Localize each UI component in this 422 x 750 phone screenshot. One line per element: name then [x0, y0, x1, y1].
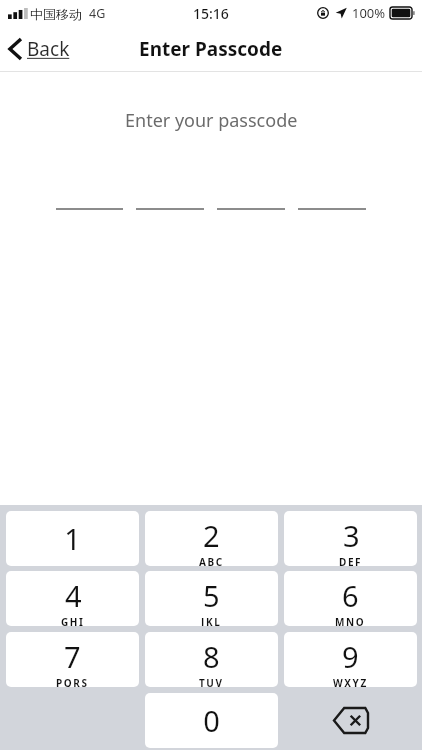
button[interactable]: 9	[284, 632, 417, 687]
staticText: WXYZ	[333, 676, 368, 687]
staticText: DEF	[339, 555, 363, 566]
staticText: PQRS	[56, 676, 89, 687]
staticText: TUV	[199, 676, 224, 687]
staticText: 8	[203, 637, 220, 676]
button[interactable]: 1	[6, 511, 139, 566]
staticText: 4	[65, 576, 82, 615]
staticText: 3	[343, 516, 360, 555]
staticText: 1	[64, 519, 81, 558]
staticText: 15:16	[193, 4, 229, 23]
staticText: JKL	[201, 615, 222, 626]
staticText: MNO	[335, 615, 366, 626]
staticText: GHI	[61, 615, 85, 626]
button[interactable]: 2	[145, 511, 278, 566]
staticText: Back	[27, 36, 70, 62]
staticText: 4G	[89, 5, 106, 22]
button[interactable]: 6	[284, 571, 417, 626]
button[interactable]: 0	[145, 693, 278, 748]
button[interactable]: 3	[284, 511, 417, 566]
button[interactable]: 4	[6, 571, 139, 626]
button[interactable]: 5	[145, 571, 278, 626]
button[interactable]: 7	[6, 632, 139, 687]
staticText: 2	[203, 516, 220, 555]
staticText: ABC	[199, 555, 224, 566]
staticText: 9	[342, 637, 359, 676]
staticText: 0	[203, 701, 220, 740]
staticText: 6	[342, 576, 359, 615]
staticText: 中国移动	[30, 6, 82, 22]
staticText: 100%	[352, 4, 386, 22]
staticText: 7	[64, 637, 81, 676]
staticText: Enter Passcode	[139, 36, 283, 62]
button[interactable]: Back	[0, 26, 80, 72]
button[interactable]: 8	[145, 632, 278, 687]
staticText: 5	[203, 576, 220, 615]
staticText: Enter your passcode	[125, 108, 298, 133]
button[interactable]: Delete	[284, 693, 417, 748]
